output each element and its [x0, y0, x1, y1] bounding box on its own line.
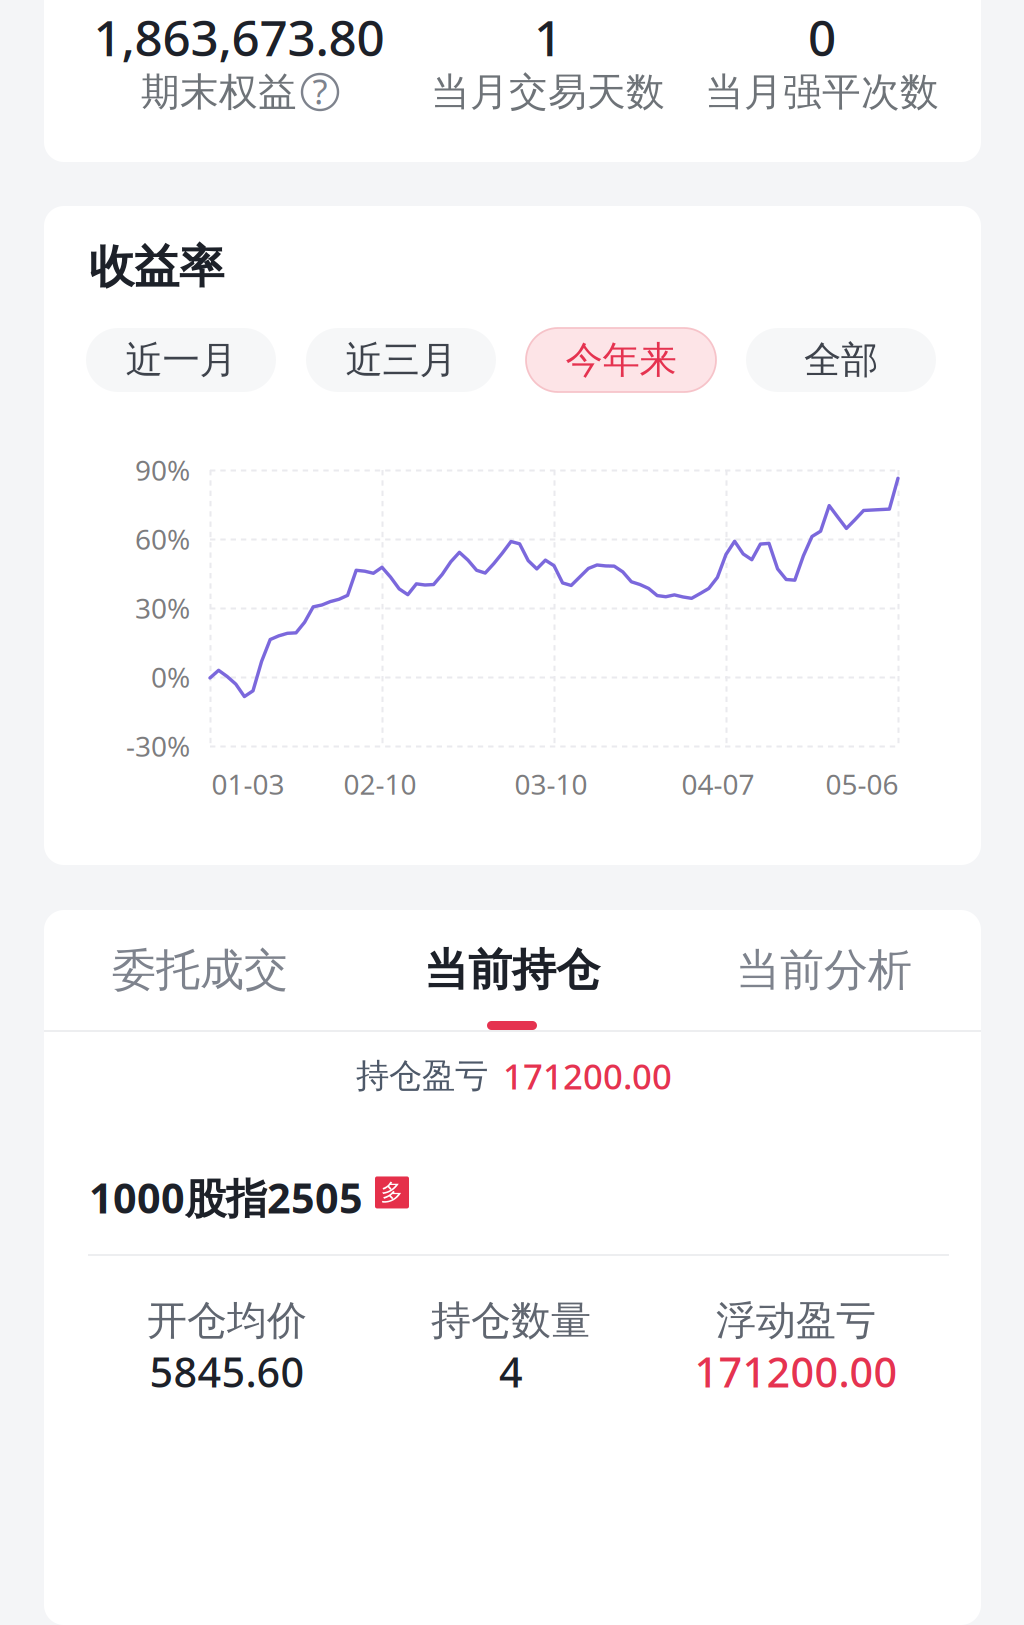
staticText: 05-06 — [825, 765, 898, 803]
staticText: 0 — [808, 4, 836, 70]
staticText: 当前分析 — [736, 943, 912, 997]
staticText: 近三月 — [345, 337, 456, 383]
staticText: 5845.60 — [149, 1344, 304, 1399]
staticText: 期末权益 — [141, 68, 297, 116]
staticText: 当月交易天数 — [431, 68, 665, 116]
staticText: 02-10 — [343, 765, 416, 803]
staticText: 持仓数量 — [431, 1296, 591, 1345]
staticText: 近一月 — [125, 337, 236, 383]
staticText: 今年来 — [565, 337, 676, 383]
staticText: 当月强平次数 — [705, 68, 939, 116]
staticText: 171200.00 — [694, 1344, 897, 1399]
button[interactable]: 委托成交 — [60, 943, 340, 1035]
button[interactable]: 今年来 — [526, 328, 716, 392]
staticText: 持仓盈亏 — [356, 1055, 488, 1096]
staticText: -30% — [126, 727, 190, 765]
button[interactable]: 当前持仓 — [372, 943, 652, 1035]
staticText: 开仓均价 — [147, 1296, 307, 1345]
staticText: 多 — [380, 1178, 403, 1206]
staticText: 60% — [135, 520, 190, 558]
button[interactable]: 近一月 — [86, 328, 276, 392]
button[interactable]: 近三月 — [306, 328, 496, 392]
staticText: 0% — [151, 658, 190, 696]
staticText: ? — [312, 68, 327, 114]
staticText: 171200.00 — [503, 1053, 672, 1099]
staticText: 03-10 — [514, 765, 587, 803]
staticText: 委托成交 — [112, 943, 288, 997]
staticText: 浮动盈亏 — [716, 1296, 876, 1345]
staticText: 1,863,673.80 — [93, 4, 384, 70]
staticText: 30% — [135, 589, 190, 627]
staticText: 1000股指2505 — [89, 1170, 363, 1225]
staticText: 1 — [534, 4, 562, 70]
button[interactable]: 全部 — [746, 328, 936, 392]
staticText: 收益率 — [89, 239, 224, 295]
staticText: 90% — [135, 451, 190, 489]
staticText: 当前持仓 — [424, 943, 600, 997]
staticText: 全部 — [804, 337, 878, 383]
button[interactable]: 当前分析 — [684, 943, 964, 1035]
staticText: 01-03 — [211, 765, 284, 803]
staticText: 04-07 — [681, 765, 754, 803]
staticText: 4 — [499, 1344, 523, 1399]
